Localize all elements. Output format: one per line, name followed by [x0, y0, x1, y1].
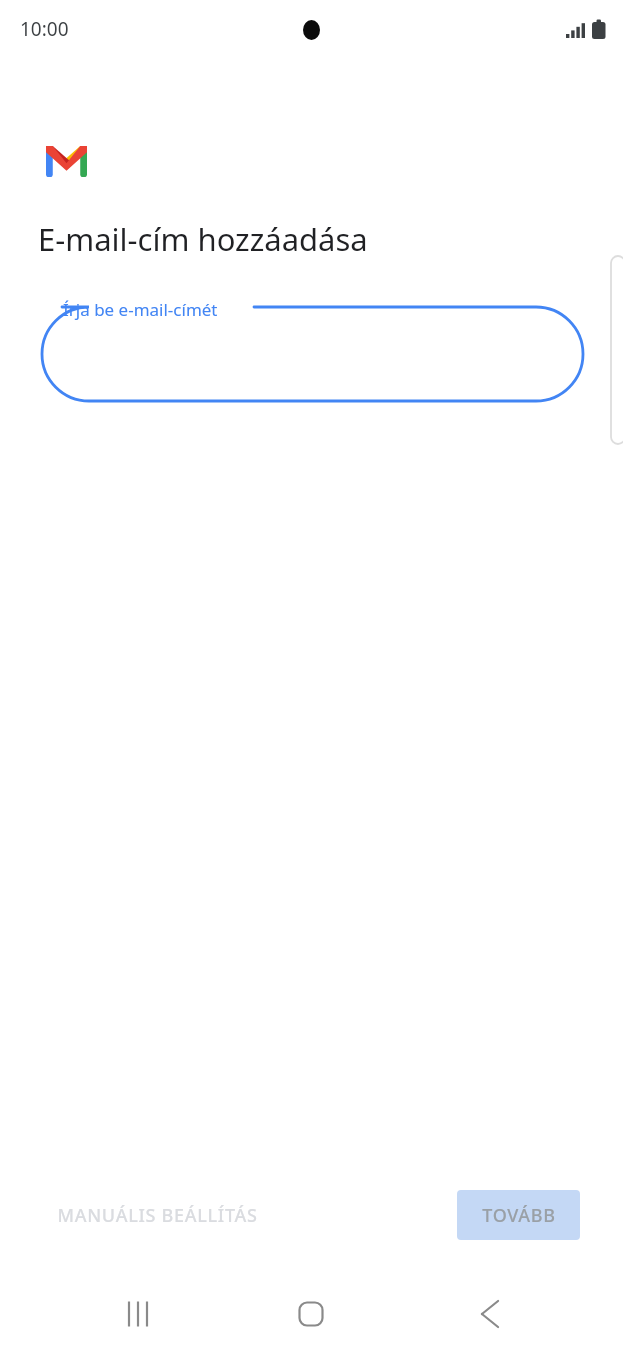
staticText: 10:00 [20, 16, 69, 42]
button[interactable] [42, 307, 583, 401]
button[interactable]: MANUÁLIS BEÁLLÍTÁS [28, 1192, 286, 1238]
staticText: MANUÁLIS BEÁLLÍTÁS [57, 1203, 258, 1228]
button[interactable]: Back [464, 1290, 512, 1338]
button[interactable]: Recent apps [106, 1290, 154, 1338]
staticText: Írja be e-mail-címét [63, 298, 218, 321]
staticText: TOVÁBB [482, 1203, 556, 1228]
staticText: E-mail-cím hozzáadása [38, 218, 368, 260]
button[interactable]: TOVÁBB [457, 1190, 580, 1240]
button[interactable]: Home [287, 1290, 335, 1338]
